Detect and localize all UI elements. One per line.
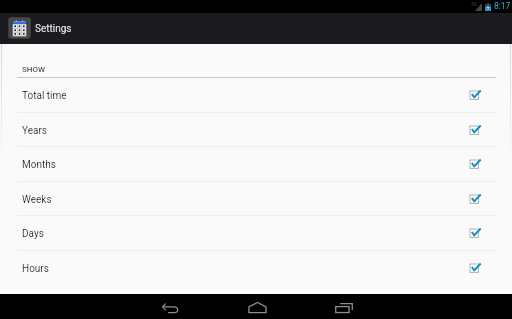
button[interactable]: Recent apps bbox=[313, 294, 375, 319]
button[interactable]: Months bbox=[0, 146, 512, 181]
button[interactable]: Weeks bbox=[0, 181, 512, 216]
staticText: Hours bbox=[22, 263, 49, 275]
staticText: Days bbox=[22, 228, 44, 240]
staticText: 8:17 bbox=[494, 1, 511, 11]
button[interactable]: Years bbox=[0, 112, 512, 147]
staticText: Total time bbox=[22, 90, 67, 102]
staticText: SHOW bbox=[22, 65, 46, 74]
button[interactable]: Hours bbox=[0, 250, 512, 285]
staticText: Years bbox=[22, 125, 47, 137]
button[interactable]: Home bbox=[226, 294, 288, 319]
staticText: Weeks bbox=[22, 194, 52, 206]
staticText: 3G bbox=[471, 1, 478, 7]
staticText: Settings bbox=[35, 23, 72, 35]
button[interactable]: Total time bbox=[0, 77, 512, 112]
staticText: Months bbox=[22, 159, 56, 171]
button[interactable]: Navigate up bbox=[8, 17, 31, 39]
button[interactable]: Days bbox=[0, 215, 512, 250]
button[interactable]: Back bbox=[139, 294, 201, 319]
